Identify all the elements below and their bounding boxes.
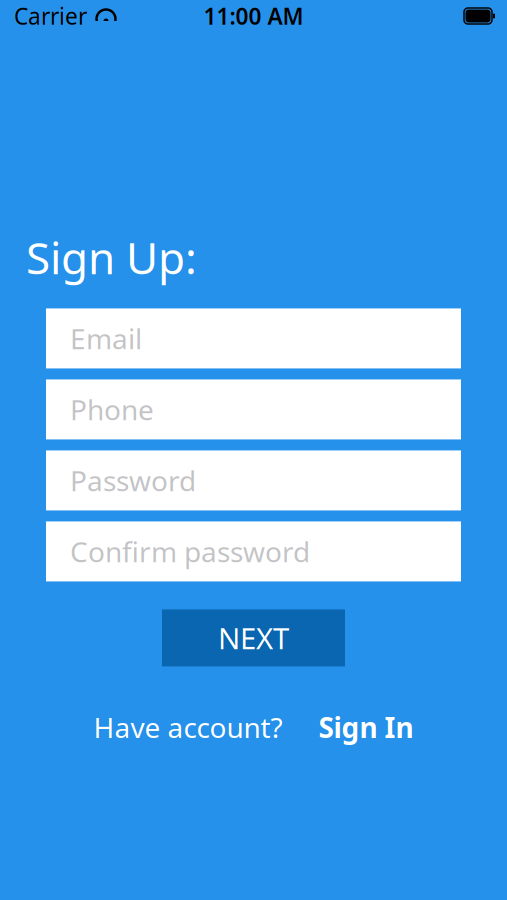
staticText: Email bbox=[70, 320, 142, 357]
staticText: Phone bbox=[70, 391, 154, 428]
button[interactable]: NEXT bbox=[162, 609, 345, 666]
staticText: 11:00 AM bbox=[203, 1, 303, 31]
button[interactable]: Sign In bbox=[318, 708, 413, 746]
staticText: Sign Up: bbox=[26, 228, 197, 286]
staticText: Sign In bbox=[318, 708, 413, 746]
staticText: Carrier bbox=[14, 1, 87, 31]
staticText: Confirm password bbox=[70, 533, 310, 570]
staticText: NEXT bbox=[218, 618, 289, 657]
staticText: Have account? bbox=[93, 708, 282, 746]
staticText: Password bbox=[70, 462, 196, 499]
